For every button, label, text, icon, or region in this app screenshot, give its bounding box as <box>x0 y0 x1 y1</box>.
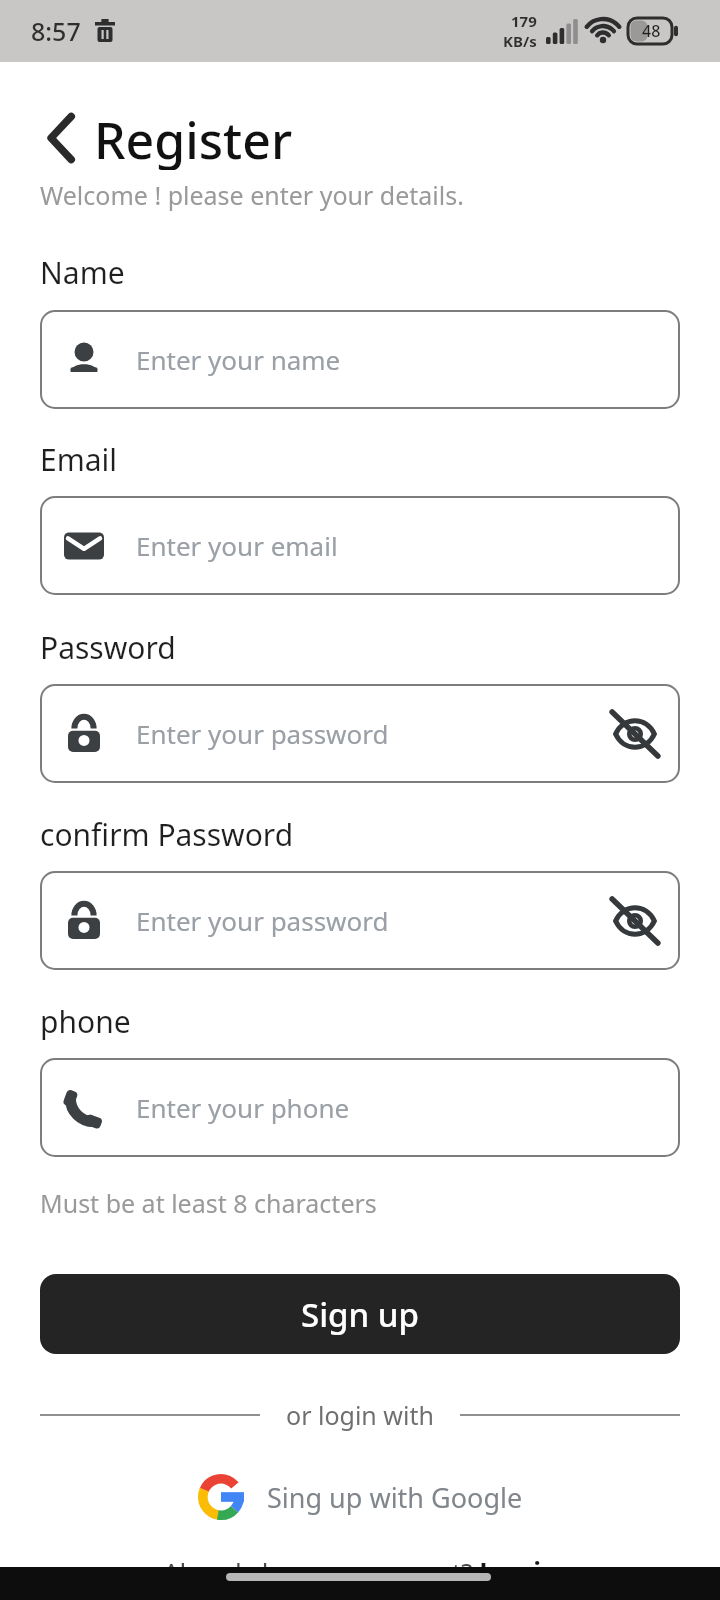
staticText: 48 <box>642 20 661 42</box>
staticText: 8:57 <box>31 14 81 48</box>
button[interactable]: Enter your password <box>40 871 680 970</box>
button[interactable]: Already have an account? Log in <box>163 1554 558 1589</box>
button[interactable]: Sign up <box>40 1274 680 1354</box>
staticText: or login with <box>286 1398 434 1432</box>
staticText: Welcome ! please enter your details. <box>40 178 464 212</box>
button[interactable]: Enter your email <box>40 496 680 595</box>
staticText: Register <box>94 106 293 170</box>
staticText: confirm Password <box>40 814 294 855</box>
button[interactable]: Sing up with Google <box>198 1474 523 1520</box>
staticText: KB/s <box>503 31 537 51</box>
staticText: Must be at least 8 characters <box>40 1186 377 1220</box>
staticText: Name <box>40 252 125 293</box>
staticText: Enter your password <box>136 903 389 938</box>
staticText: Enter your name <box>136 342 341 377</box>
staticText: Enter your password <box>136 716 389 751</box>
staticText: Enter your phone <box>136 1090 350 1125</box>
button[interactable]: Enter your name <box>40 310 680 409</box>
staticText: Email <box>40 439 118 480</box>
staticText: Password <box>40 627 176 668</box>
staticText: Sing up with Google <box>267 1479 523 1516</box>
staticText: Sign up <box>301 1292 419 1337</box>
button[interactable]: Register <box>40 106 293 170</box>
staticText: phone <box>40 1001 131 1042</box>
staticText: 179 <box>511 11 537 31</box>
button[interactable]: Enter your password <box>40 684 680 783</box>
button[interactable]: Enter your phone <box>40 1058 680 1157</box>
staticText: Enter your email <box>136 528 338 563</box>
